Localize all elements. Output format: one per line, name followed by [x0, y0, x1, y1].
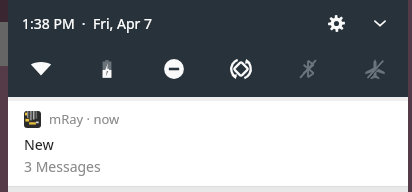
staticText: New [24, 135, 54, 154]
button[interactable]: Bluetooth off [274, 46, 341, 92]
button[interactable]: Do not disturb [140, 46, 207, 92]
button[interactable]: Battery saver [74, 46, 140, 92]
button[interactable]: mRay · now [8, 101, 408, 186]
button[interactable]: Airplane mode off [341, 46, 408, 92]
button[interactable]: Wi-Fi [8, 46, 74, 92]
staticText: 3 Messages [24, 157, 101, 176]
button[interactable]: Auto-rotate [207, 46, 274, 92]
staticText: mRay · now [49, 110, 120, 128]
button[interactable]: Settings [318, 5, 354, 41]
staticText: 1:38 PM · Fri, Apr 7 [22, 14, 152, 33]
button[interactable]: Expand quick settings [362, 5, 398, 41]
